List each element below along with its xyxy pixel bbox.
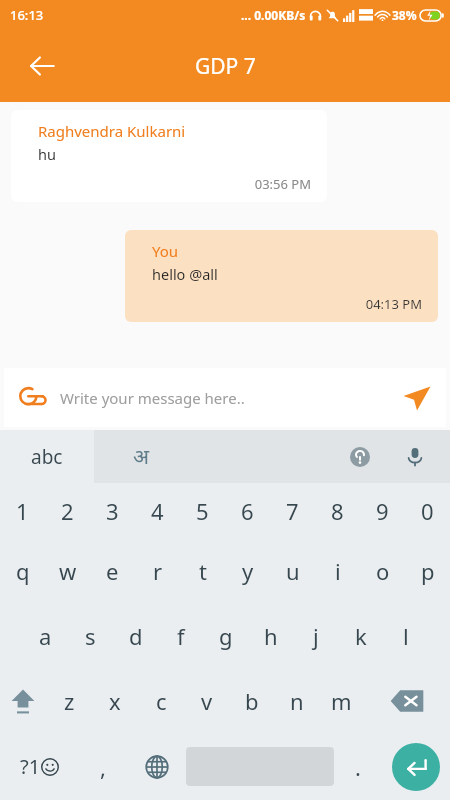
staticText: Raghvendra Kulkarni bbox=[38, 121, 186, 141]
staticText: j bbox=[313, 621, 319, 651]
button[interactable]: 4 bbox=[135, 483, 180, 538]
staticText: 0 bbox=[421, 496, 434, 526]
button[interactable]: Raghvendra Kulkarni bbox=[11, 110, 327, 202]
button[interactable]: l bbox=[383, 603, 428, 668]
button[interactable]: e bbox=[90, 538, 135, 603]
staticText: hu bbox=[38, 144, 56, 164]
staticText: l bbox=[403, 621, 409, 651]
staticText: u bbox=[286, 556, 300, 586]
staticText: z bbox=[64, 686, 75, 716]
staticText: n bbox=[290, 686, 304, 716]
staticText: b bbox=[245, 686, 259, 716]
button[interactable]: w bbox=[45, 538, 90, 603]
staticText: e bbox=[106, 556, 119, 586]
staticText: 3 bbox=[106, 496, 119, 526]
button[interactable]: You bbox=[125, 230, 438, 322]
button[interactable]: z bbox=[46, 668, 92, 733]
staticText: 8 bbox=[331, 496, 344, 526]
button[interactable]: 1 bbox=[0, 483, 45, 538]
staticText: i bbox=[335, 556, 341, 586]
staticText: c bbox=[156, 686, 167, 716]
staticText: 7 bbox=[286, 496, 299, 526]
button[interactable]: Help bbox=[338, 435, 382, 479]
staticText: 38% bbox=[392, 7, 417, 23]
staticText: p bbox=[421, 556, 435, 586]
button[interactable]: d bbox=[113, 603, 158, 668]
staticText: 6 bbox=[241, 496, 254, 526]
button[interactable]: f bbox=[158, 603, 203, 668]
button[interactable]: 8 bbox=[315, 483, 360, 538]
staticText: 16:13 bbox=[10, 6, 44, 24]
button[interactable]: j bbox=[293, 603, 338, 668]
staticText: 2 bbox=[61, 496, 74, 526]
button[interactable]: 9 bbox=[360, 483, 405, 538]
button[interactable]: h bbox=[248, 603, 293, 668]
button[interactable]: , bbox=[78, 733, 128, 800]
button[interactable]: a bbox=[22, 603, 68, 668]
staticText: 9 bbox=[376, 496, 389, 526]
staticText: g bbox=[219, 621, 233, 651]
staticText: GDP 7 bbox=[195, 52, 256, 81]
button[interactable]: Attach file bbox=[4, 370, 60, 426]
button[interactable]: r bbox=[135, 538, 180, 603]
button[interactable]: s bbox=[68, 603, 113, 668]
button[interactable]: q bbox=[0, 538, 45, 603]
button[interactable]: Shift bbox=[0, 668, 46, 733]
staticText: s bbox=[85, 621, 96, 651]
button[interactable]: p bbox=[405, 538, 450, 603]
staticText: q bbox=[16, 556, 30, 586]
button[interactable]: m bbox=[319, 668, 364, 733]
button[interactable]: Back bbox=[18, 42, 66, 90]
staticText: 03:56 PM bbox=[38, 175, 311, 193]
staticText: k bbox=[355, 621, 367, 651]
button[interactable]: Change language bbox=[128, 733, 186, 800]
button[interactable]: k bbox=[338, 603, 383, 668]
button[interactable]: Voice input bbox=[393, 435, 437, 479]
staticText: ... 0.00KB/s bbox=[241, 7, 306, 23]
button[interactable]: 2 bbox=[45, 483, 90, 538]
staticText: 4 bbox=[151, 496, 164, 526]
staticText: t bbox=[199, 556, 207, 586]
staticText: Write your message here.. bbox=[60, 388, 388, 408]
staticText: m bbox=[331, 686, 352, 716]
button[interactable]: u bbox=[270, 538, 315, 603]
button[interactable]: b bbox=[229, 668, 274, 733]
staticText: hello @all bbox=[152, 264, 218, 284]
staticText: You bbox=[152, 241, 179, 261]
button[interactable]: Enter bbox=[382, 733, 450, 800]
staticText: . bbox=[355, 752, 361, 782]
button[interactable]: 3 bbox=[90, 483, 135, 538]
button[interactable]: Symbols and emoji bbox=[0, 733, 78, 800]
button[interactable]: 5 bbox=[180, 483, 225, 538]
staticText: f bbox=[177, 621, 185, 651]
button[interactable]: o bbox=[360, 538, 405, 603]
button[interactable]: x bbox=[92, 668, 138, 733]
staticText: , bbox=[100, 752, 106, 782]
staticText: 04:13 PM bbox=[152, 295, 422, 313]
staticText: 5 bbox=[196, 496, 209, 526]
button[interactable]: i bbox=[315, 538, 360, 603]
button[interactable]: 0 bbox=[405, 483, 450, 538]
button[interactable]: . bbox=[334, 733, 382, 800]
button[interactable]: c bbox=[138, 668, 184, 733]
button[interactable]: n bbox=[274, 668, 319, 733]
button[interactable]: Send bbox=[388, 369, 446, 427]
button[interactable]: abc bbox=[0, 430, 94, 483]
button[interactable]: g bbox=[203, 603, 248, 668]
staticText: a bbox=[39, 621, 52, 651]
staticText: अ bbox=[133, 442, 150, 471]
staticText: 1 bbox=[16, 496, 29, 526]
staticText: ?1 bbox=[20, 753, 41, 780]
button[interactable]: y bbox=[225, 538, 270, 603]
button[interactable]: अ bbox=[94, 430, 188, 483]
button[interactable]: Backspace bbox=[364, 668, 450, 733]
button[interactable]: v bbox=[184, 668, 229, 733]
staticText: o bbox=[376, 556, 390, 586]
button[interactable]: t bbox=[180, 538, 225, 603]
button[interactable]: 7 bbox=[270, 483, 315, 538]
staticText: x bbox=[109, 686, 121, 716]
button[interactable]: 6 bbox=[225, 483, 270, 538]
staticText: abc bbox=[31, 444, 63, 470]
staticText: h bbox=[264, 621, 278, 651]
